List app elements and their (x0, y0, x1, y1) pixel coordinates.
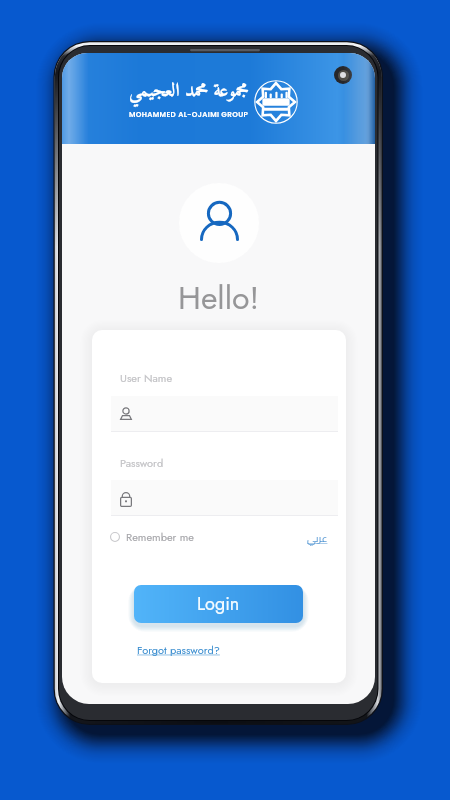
button[interactable]: Password field (111, 480, 338, 515)
staticText: User Name (120, 370, 173, 386)
button[interactable]: User name field (111, 396, 338, 431)
staticText: Hello! (178, 275, 260, 321)
button[interactable]: Remember me (110, 529, 194, 545)
staticText: مجموعة محمد العجيمي (129, 75, 249, 108)
staticText: Login (197, 591, 240, 617)
button[interactable]: عربي (307, 529, 328, 548)
button[interactable]: Login (134, 585, 303, 623)
button[interactable]: Forgot password? (137, 642, 220, 658)
staticText: MOHAMMED AL-OJAIMI GROUP (129, 109, 249, 119)
staticText: Remember me (126, 529, 194, 545)
staticText: Password (120, 455, 164, 471)
